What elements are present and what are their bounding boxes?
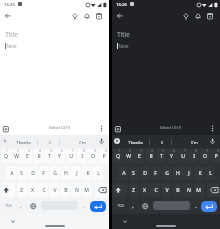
button[interactable] [95,183,108,197]
button[interactable] [183,183,193,197]
button[interactable] [71,183,81,197]
button[interactable] [172,183,182,197]
button[interactable] [183,13,189,20]
button[interactable] [3,187,10,194]
button[interactable] [123,220,127,223]
button[interactable] [207,183,220,197]
button[interactable]: . [80,201,88,211]
button[interactable] [153,201,190,210]
button[interactable] [195,13,201,20]
button[interactable] [39,166,49,180]
button[interactable] [72,13,78,20]
button[interactable] [66,149,76,163]
button[interactable] [117,13,123,19]
button[interactable] [33,149,43,163]
button[interactable] [140,183,150,197]
button[interactable] [178,149,188,163]
button[interactable] [28,166,38,180]
button[interactable] [194,183,204,197]
button[interactable] [17,183,27,197]
button[interactable] [44,149,54,163]
button[interactable] [1,149,11,163]
button[interactable] [96,13,102,20]
button[interactable] [150,183,160,197]
button[interactable] [55,149,65,163]
button[interactable] [115,126,121,133]
button[interactable] [6,166,16,180]
button[interactable] [1,183,15,197]
button[interactable] [100,125,103,132]
button[interactable]: I [43,136,57,147]
button[interactable] [211,149,220,163]
button[interactable] [140,166,150,180]
button[interactable]: Title [112,28,134,40]
button[interactable] [183,166,193,180]
button[interactable] [5,13,11,19]
button[interactable] [129,166,139,180]
button[interactable] [38,183,48,197]
button[interactable] [194,166,204,180]
button[interactable] [115,187,122,194]
button[interactable] [30,203,36,209]
button[interactable]: I'm [185,136,203,147]
button[interactable] [2,138,8,144]
button[interactable] [17,166,27,180]
button[interactable]: Title [0,28,22,40]
button[interactable]: . [192,201,200,211]
button[interactable] [61,166,71,180]
button[interactable] [134,149,144,163]
button[interactable] [118,166,128,180]
button[interactable] [49,183,59,197]
button[interactable] [82,183,92,197]
button[interactable] [151,166,161,180]
button[interactable]: ?123 [1,201,15,210]
button[interactable] [207,13,213,20]
button[interactable] [210,138,215,146]
button[interactable] [142,203,148,209]
button[interactable] [77,149,87,163]
button[interactable] [167,149,177,163]
button[interactable] [60,183,70,197]
button[interactable] [22,149,32,163]
button[interactable] [200,149,210,163]
button[interactable]: Note [3,41,19,50]
button[interactable] [50,166,60,180]
button[interactable] [205,166,215,180]
button[interactable] [12,149,22,163]
button[interactable]: ?123 [113,201,127,210]
button[interactable] [3,126,9,133]
button[interactable]: , [129,201,137,211]
button[interactable] [98,187,107,194]
button[interactable] [113,149,123,163]
button[interactable]: , [17,201,25,211]
button[interactable]: Thanks [122,136,148,147]
button[interactable] [99,138,104,146]
button[interactable] [84,13,90,20]
button[interactable] [11,220,15,223]
button[interactable] [82,166,92,180]
button[interactable] [156,225,176,227]
button[interactable] [113,183,127,197]
button[interactable] [45,225,65,227]
button[interactable] [156,149,166,163]
button[interactable] [114,138,120,144]
button[interactable] [88,149,98,163]
button[interactable] [71,166,81,180]
button[interactable]: Thanks [10,136,36,147]
button[interactable]: Note [115,41,131,50]
button[interactable] [145,149,155,163]
button[interactable] [201,201,217,212]
button[interactable] [124,149,134,163]
button[interactable] [28,183,38,197]
button[interactable] [162,166,172,180]
button[interactable] [211,125,214,132]
button[interactable] [161,183,171,197]
button[interactable] [210,187,219,194]
button[interactable] [173,166,183,180]
button[interactable] [93,166,103,180]
button[interactable]: I'm [73,136,91,147]
button[interactable] [189,149,199,163]
button[interactable]: I [155,136,169,147]
button[interactable] [90,201,106,212]
